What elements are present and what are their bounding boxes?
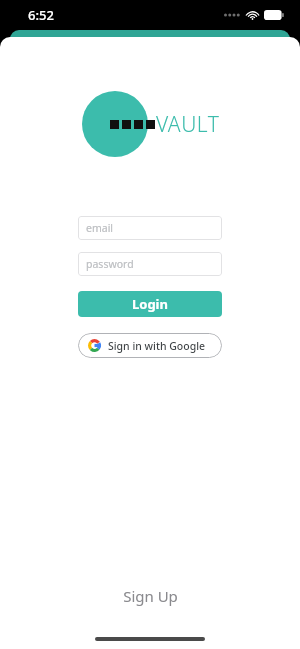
- staticText: Sign in with Google: [108, 339, 206, 353]
- button[interactable]: email: [78, 216, 222, 240]
- button[interactable]: Login: [78, 291, 222, 317]
- button[interactable]: Sign Up: [101, 578, 200, 614]
- staticText: 6:52: [28, 6, 54, 24]
- staticText: Login: [132, 295, 168, 313]
- staticText: Sign Up: [123, 586, 178, 606]
- staticText: VAULT: [156, 110, 220, 139]
- button[interactable]: password: [78, 252, 222, 276]
- button[interactable]: Sign in with Google: [78, 333, 222, 358]
- staticText: email: [86, 221, 114, 235]
- staticText: password: [86, 257, 134, 271]
